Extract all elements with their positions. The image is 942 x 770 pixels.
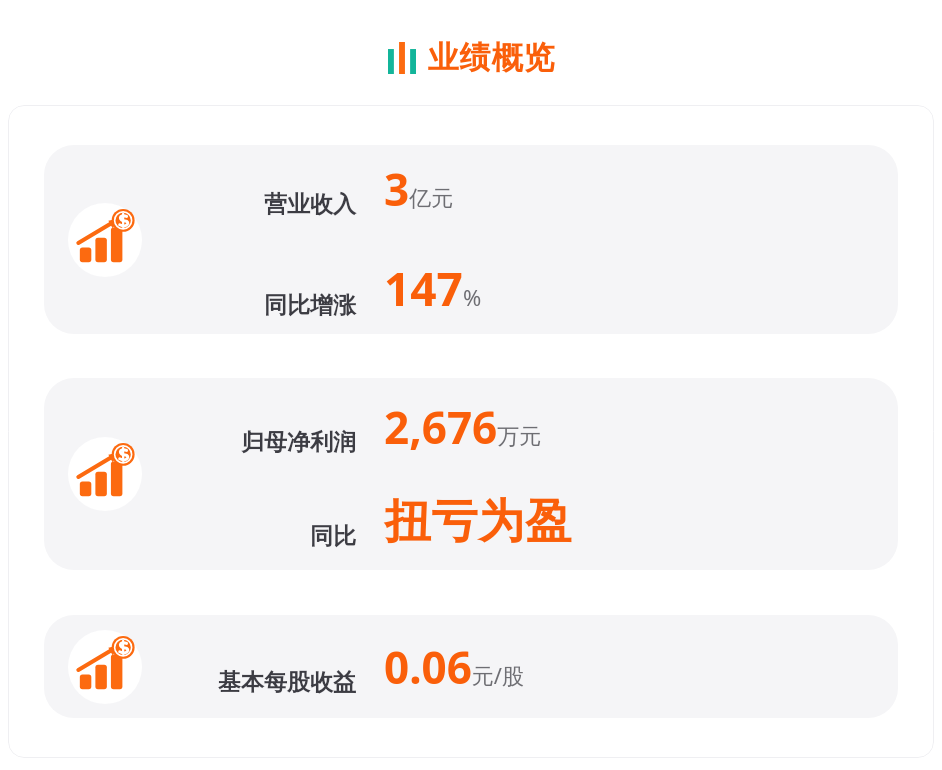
staticText: 归母净利润 [241,428,356,457]
button[interactable]: 增长图标 [44,615,898,718]
staticText: 0.06元/股 [384,637,525,697]
other: 业绩图标 [388,42,416,74]
other: 增长图标 [68,630,142,704]
button[interactable]: 增长图标 [44,145,898,334]
staticText: 扭亏为盈 [384,493,572,551]
staticText: 3亿元 [384,159,454,219]
button[interactable]: 归母净利润 [160,397,898,457]
staticText: 同比增涨 [264,291,356,320]
staticText: 营业收入 [264,190,356,219]
button[interactable]: 增长图标 [44,378,898,570]
other: 增长图标 [68,203,142,277]
other: 增长图标 [68,437,142,511]
staticText: 同比 [310,522,356,551]
staticText: 2,676万元 [384,397,542,457]
staticText: 基本每股收益 [218,668,356,697]
staticText: 147% [384,257,482,320]
button[interactable]: 业绩图标 [388,38,555,77]
button[interactable]: 同比 [160,493,898,551]
button[interactable]: 营业收入 [160,159,898,219]
button[interactable]: 同比增涨 [160,257,898,320]
staticText: 业绩概览 [427,38,555,77]
button[interactable]: 基本每股收益 [160,637,898,697]
